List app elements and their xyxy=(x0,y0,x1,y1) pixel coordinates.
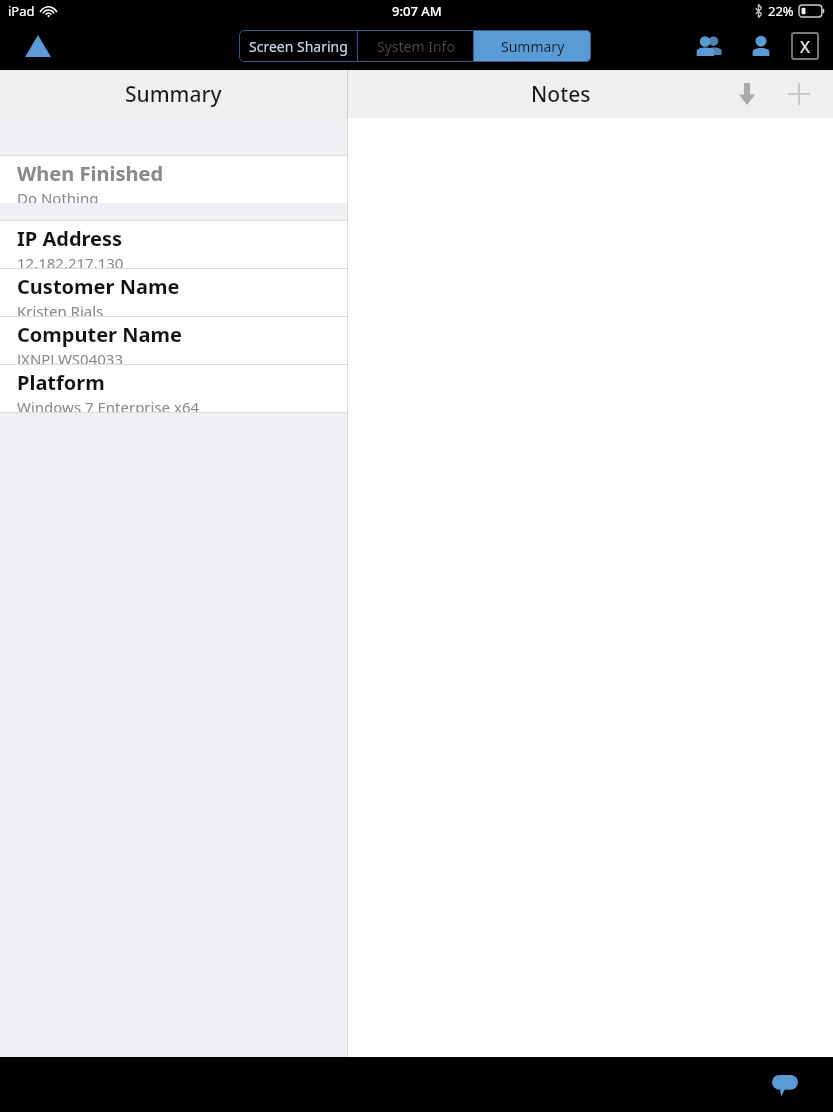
button[interactable]: When Finished xyxy=(0,156,347,203)
button[interactable]: Add note xyxy=(779,74,819,114)
button[interactable]: Close xyxy=(791,32,819,60)
button[interactable]: Chat xyxy=(763,1063,807,1107)
staticText: 12.182.217.130 xyxy=(17,253,124,268)
staticText: 9:07 AM xyxy=(392,2,442,20)
staticText: Summary xyxy=(125,80,222,109)
staticText: Windows 7 Enterprise x64 xyxy=(17,397,200,412)
staticText: Screen Sharing xyxy=(249,37,348,56)
staticText: Kristen Rials xyxy=(17,301,104,316)
button[interactable]: System Info xyxy=(358,30,473,62)
staticText: JXNPLWS04033 xyxy=(17,349,124,364)
staticText: Computer Name xyxy=(17,321,182,348)
staticText: Platform xyxy=(17,369,105,396)
button[interactable]: Summary xyxy=(474,30,591,62)
staticText: When Finished xyxy=(17,160,164,187)
staticText: Notes xyxy=(531,80,591,109)
staticText: Customer Name xyxy=(17,273,180,300)
staticText: Summary xyxy=(501,37,565,56)
button[interactable]: Platform xyxy=(0,365,347,412)
button[interactable]: Expand xyxy=(18,26,58,66)
staticText: Do Nothing xyxy=(17,188,99,203)
staticText: 22% xyxy=(768,2,794,20)
button[interactable]: Download notes xyxy=(727,74,767,114)
button[interactable]: Customer Name xyxy=(0,269,347,316)
staticText: X xyxy=(800,35,810,58)
staticText: iPad xyxy=(8,2,35,20)
button[interactable]: Computer Name xyxy=(0,317,347,364)
button[interactable]: Screen Sharing xyxy=(239,30,357,62)
button[interactable]: Participants xyxy=(689,26,729,66)
button[interactable]: IP Address xyxy=(0,221,347,268)
staticText: System Info xyxy=(377,37,455,56)
button[interactable]: Person xyxy=(741,26,781,66)
staticText: IP Address xyxy=(17,225,123,252)
